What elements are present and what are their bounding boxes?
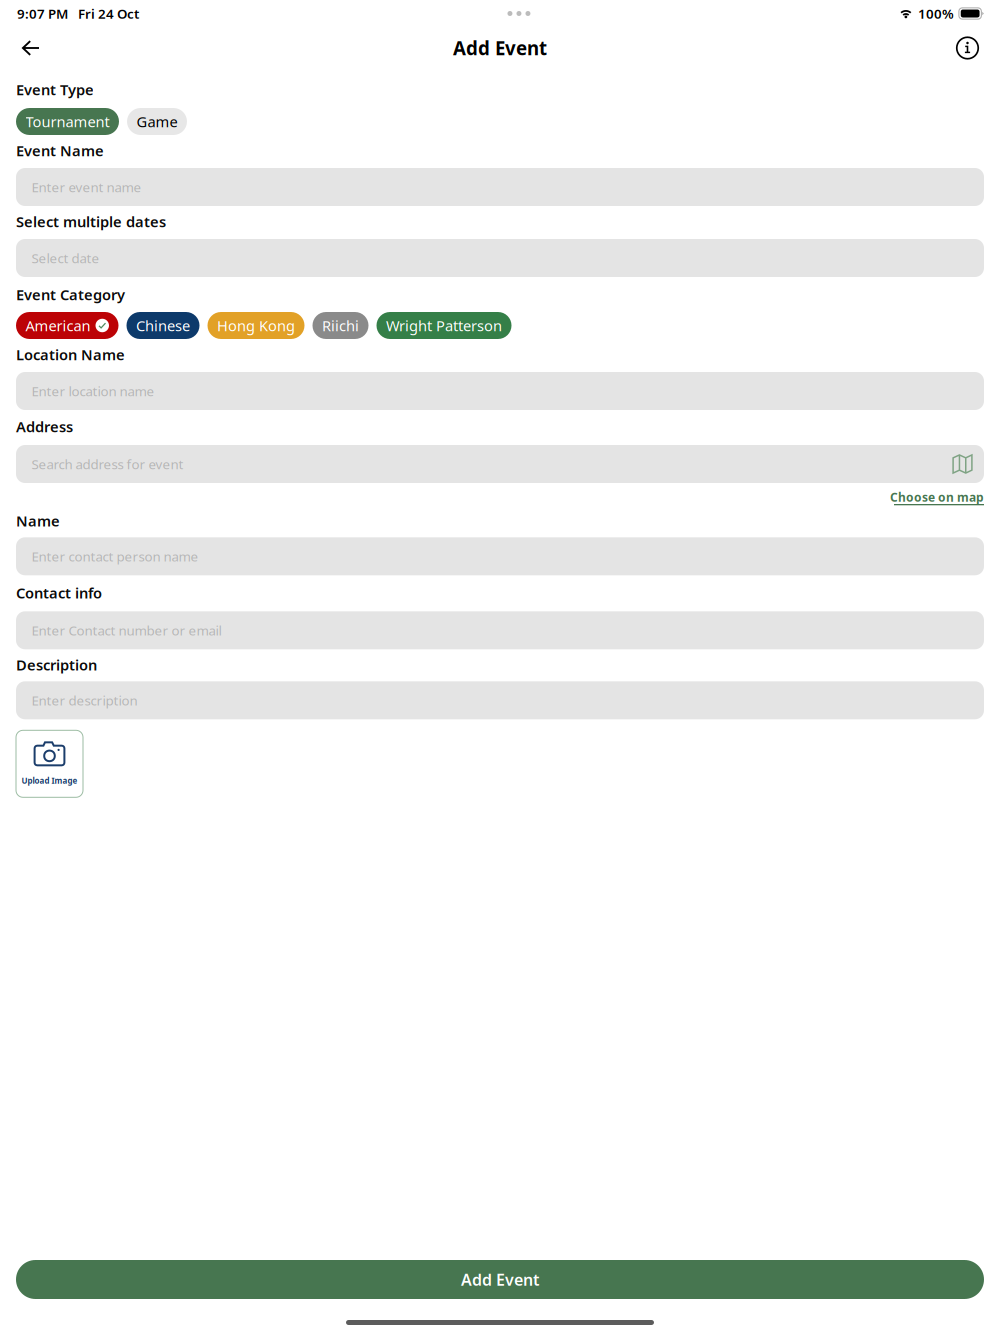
staticText: Enter location name — [31, 382, 154, 400]
staticText: Chinese — [136, 316, 190, 335]
staticText: Riichi — [322, 316, 359, 335]
staticText: Location Name — [16, 345, 125, 364]
staticText: Choose on map — [890, 489, 984, 505]
button[interactable]: Game — [127, 108, 187, 135]
staticText: Enter Contact number or email — [31, 621, 221, 639]
staticText: Contact info — [16, 583, 102, 603]
staticText: Address — [16, 417, 73, 436]
staticText: Enter description — [31, 691, 137, 709]
staticText: Upload Image — [21, 775, 77, 786]
button[interactable]: Add Event — [16, 1260, 984, 1299]
button[interactable]: American — [16, 312, 118, 339]
staticText: American — [25, 316, 90, 335]
staticText: Name — [16, 511, 60, 531]
staticText: Event Name — [16, 141, 104, 160]
staticText: Add Event — [453, 36, 547, 60]
staticText: Add Event — [461, 1269, 539, 1290]
button[interactable]: Information — [942, 28, 1000, 67]
staticText: Event Type — [16, 80, 94, 99]
staticText: Game — [136, 112, 177, 131]
staticText: Description — [16, 655, 97, 675]
staticText: Fri 24 Oct — [78, 5, 139, 22]
staticText: Enter event name — [31, 178, 141, 196]
staticText: Search address for event — [31, 455, 183, 473]
staticText: Enter contact person name — [31, 547, 198, 565]
staticText: Select date — [31, 249, 99, 267]
button[interactable]: Back — [0, 30, 54, 66]
button[interactable]: Tournament — [16, 108, 119, 135]
staticText: Select multiple dates — [16, 212, 166, 231]
button[interactable]: Hong Kong — [207, 312, 304, 339]
staticText: 9:07 PM — [17, 5, 68, 22]
staticText: Event Category — [16, 285, 125, 304]
button[interactable]: Upload Image — [16, 730, 83, 797]
staticText: Tournament — [25, 112, 109, 131]
button[interactable]: Choose on map — [890, 490, 984, 505]
button[interactable]: Riichi — [312, 312, 368, 339]
staticText: 100% — [918, 5, 954, 22]
staticText: Wright Patterson — [386, 316, 502, 335]
button[interactable]: Wright Patterson — [376, 312, 511, 339]
button[interactable]: Chinese — [126, 312, 199, 339]
staticText: Hong Kong — [217, 316, 295, 335]
